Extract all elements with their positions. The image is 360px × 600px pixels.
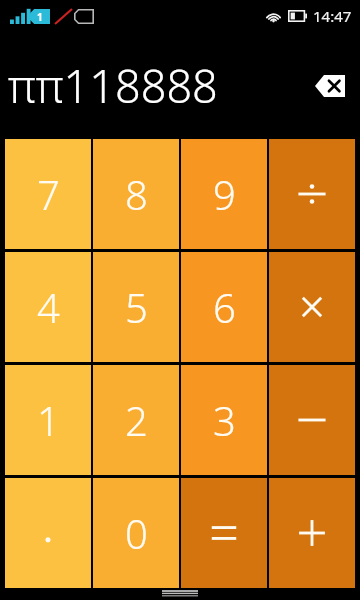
button[interactable]	[269, 252, 355, 362]
button[interactable]	[5, 478, 91, 588]
button[interactable]	[181, 478, 267, 588]
staticText: 1	[37, 10, 43, 24]
button[interactable]: 7	[5, 139, 91, 249]
staticText: 9	[213, 167, 236, 221]
button[interactable]: 5	[93, 252, 179, 362]
button[interactable]: 3	[181, 365, 267, 475]
button[interactable]: 8	[93, 139, 179, 249]
button[interactable]: 0	[93, 478, 179, 588]
staticText: 1	[37, 393, 60, 447]
button[interactable]: 1	[5, 365, 91, 475]
staticText: 4	[37, 280, 60, 334]
button[interactable]	[269, 139, 355, 249]
staticText: 8	[125, 167, 148, 221]
staticText: 7	[37, 167, 60, 221]
button[interactable]: 9	[181, 139, 267, 249]
button[interactable]: Backspace	[310, 67, 350, 105]
button[interactable]: 2	[93, 365, 179, 475]
staticText: 14:47	[313, 6, 352, 26]
staticText: 2	[125, 393, 148, 447]
button[interactable]: 4	[5, 252, 91, 362]
staticText: 6	[213, 280, 236, 334]
staticText: ππ118888	[8, 55, 304, 116]
staticText: 5	[125, 280, 148, 334]
button[interactable]: 6	[181, 252, 267, 362]
staticText: 3	[213, 393, 236, 447]
staticText: 0	[125, 506, 148, 560]
button[interactable]	[269, 365, 355, 475]
button[interactable]	[269, 478, 355, 588]
